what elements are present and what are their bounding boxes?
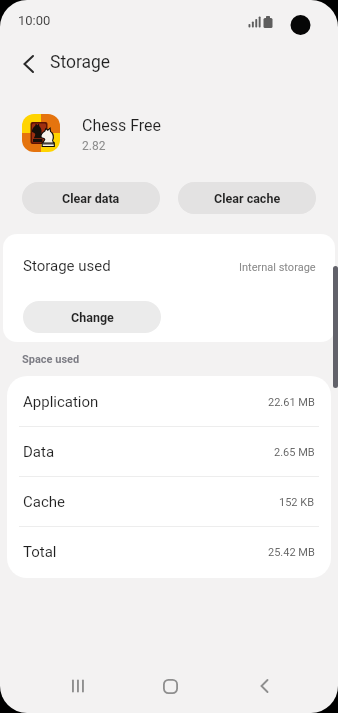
button[interactable]: Total bbox=[7, 527, 331, 577]
staticText: Change bbox=[71, 310, 114, 325]
button[interactable]: Application bbox=[7, 377, 331, 427]
staticText: Storage used bbox=[23, 257, 111, 275]
button[interactable]: Change bbox=[23, 301, 161, 333]
staticText: 2.65 MB bbox=[274, 446, 315, 459]
button[interactable] bbox=[55, 668, 100, 704]
staticText: 10:00 bbox=[18, 13, 51, 28]
staticText: Cache bbox=[23, 493, 65, 511]
button[interactable]: Clear cache bbox=[178, 182, 316, 214]
staticText: Data bbox=[23, 443, 55, 461]
staticText: Internal storage bbox=[239, 261, 316, 274]
staticText: 2.82 bbox=[82, 139, 106, 153]
button[interactable]: Data bbox=[7, 427, 331, 477]
button[interactable]: Clear data bbox=[22, 182, 160, 214]
staticText: Clear cache bbox=[214, 191, 281, 206]
staticText: Total bbox=[23, 543, 57, 561]
staticText: 22.61 MB bbox=[268, 396, 315, 409]
button[interactable] bbox=[242, 668, 287, 704]
button[interactable] bbox=[148, 668, 193, 704]
staticText: 25.42 MB bbox=[268, 546, 315, 559]
staticText: Application bbox=[23, 393, 99, 411]
staticText: Clear data bbox=[62, 191, 120, 206]
button[interactable] bbox=[10, 50, 46, 78]
staticText: 152 KB bbox=[279, 496, 315, 509]
button[interactable]: Cache bbox=[7, 477, 331, 527]
staticText: Space used bbox=[22, 353, 80, 366]
staticText: Storage bbox=[50, 52, 111, 73]
staticText: Chess Free bbox=[82, 116, 162, 135]
